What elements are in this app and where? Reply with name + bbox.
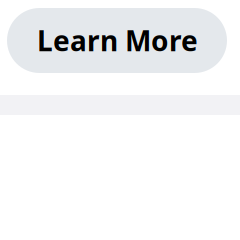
button[interactable]: Learn More [7,8,227,73]
staticText: Learn More [37,22,198,59]
